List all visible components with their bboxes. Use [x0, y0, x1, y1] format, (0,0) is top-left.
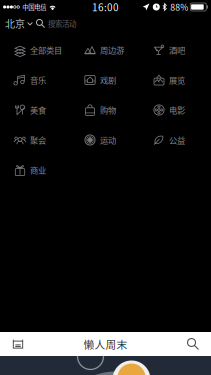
staticText: 美食: [30, 104, 46, 116]
staticText: 戏剧: [100, 74, 116, 86]
staticText: 懒人周末: [83, 336, 127, 352]
button[interactable]: 公益: [139, 125, 211, 155]
button[interactable]: 电影: [139, 95, 211, 125]
staticText: 展览: [169, 74, 185, 86]
staticText: 16:00: [92, 0, 119, 14]
button[interactable]: 戏剧: [70, 65, 139, 95]
staticText: 酒吧: [169, 44, 185, 56]
button[interactable]: 展览: [139, 65, 211, 95]
staticText: 聚会: [30, 134, 46, 146]
button[interactable]: 美食: [0, 95, 70, 125]
staticText: 88%: [170, 1, 188, 13]
button[interactable]: 全部类目: [0, 35, 70, 65]
button[interactable]: Search: [179, 332, 207, 356]
button[interactable]: 购物: [70, 95, 139, 125]
button[interactable]: 酒吧: [139, 35, 211, 65]
button[interactable]: 运动: [70, 125, 139, 155]
staticText: 公益: [169, 134, 185, 146]
button[interactable]: 搜索活动: [36, 14, 122, 33]
button[interactable]: 聚会: [0, 125, 70, 155]
staticText: 购物: [100, 104, 116, 116]
button[interactable]: 北京: [0, 14, 36, 33]
staticText: 周边游: [100, 44, 124, 56]
staticText: 北京: [5, 16, 25, 31]
button[interactable]: 音乐: [0, 65, 70, 95]
staticText: 运动: [100, 134, 116, 146]
staticText: 全部类目: [30, 44, 62, 56]
staticText: 中国电信: [22, 2, 46, 12]
button[interactable]: Menu: [4, 332, 32, 356]
staticText: 音乐: [30, 74, 46, 86]
staticText: 商业: [30, 164, 46, 176]
staticText: 搜索活动: [48, 18, 76, 29]
button[interactable]: 周边游: [70, 35, 139, 65]
staticText: 电影: [169, 104, 185, 116]
button[interactable]: 商业: [0, 155, 70, 185]
